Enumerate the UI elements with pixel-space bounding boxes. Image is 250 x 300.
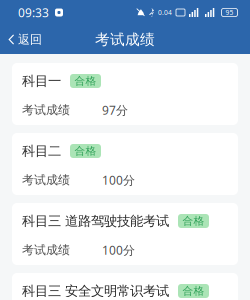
staticText: 科目三 安全文明常识考试 [22, 283, 169, 299]
staticText: 100分 [102, 242, 135, 258]
staticText: 科目一 [22, 73, 61, 89]
button[interactable]: 科目一 [12, 63, 238, 125]
staticText: 考试成绩 [95, 30, 155, 48]
staticText: 科目二 [22, 143, 61, 159]
staticText: 考试成绩 [22, 173, 70, 187]
staticText: 考试成绩 [22, 243, 70, 257]
staticText: 考试成绩 [22, 103, 70, 117]
button[interactable]: 返回 [0, 25, 50, 54]
staticText: 100分 [102, 172, 135, 188]
staticText: 合格 [182, 284, 204, 297]
staticText: 合格 [182, 214, 204, 227]
staticText: 合格 [74, 144, 96, 157]
staticText: 09:33 [18, 4, 49, 20]
staticText: 97分 [102, 102, 128, 118]
staticText: 0.04 [158, 8, 172, 17]
staticText: 科目三 道路驾驶技能考试 [22, 213, 169, 229]
staticText: 返回 [18, 32, 42, 47]
button[interactable]: 科目二 [12, 133, 238, 195]
staticText: 合格 [74, 74, 96, 87]
staticText: 95 [225, 8, 233, 17]
button[interactable]: 科目三 道路驾驶技能考试 [12, 203, 238, 265]
button[interactable]: 科目三 安全文明常识考试 [12, 273, 238, 300]
